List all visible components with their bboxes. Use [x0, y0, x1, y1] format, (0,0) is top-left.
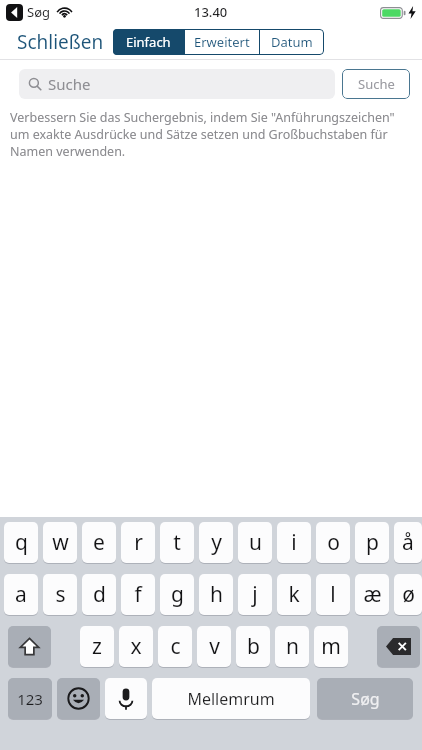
button[interactable]: e: [82, 522, 116, 563]
button[interactable]: t: [160, 522, 194, 563]
button[interactable]: Suche: [342, 69, 410, 99]
button[interactable]: k: [277, 574, 311, 615]
button[interactable]: n: [275, 626, 309, 667]
staticText: l: [330, 580, 336, 609]
button[interactable]: Schließen: [17, 29, 104, 55]
staticText: a: [15, 580, 27, 609]
button[interactable]: j: [238, 574, 272, 615]
staticText: f: [134, 580, 142, 609]
staticText: 123: [17, 689, 43, 709]
button[interactable]: a: [4, 574, 38, 615]
button[interactable]: v: [197, 626, 231, 667]
staticText: 13.40: [194, 3, 228, 21]
staticText: r: [134, 528, 143, 557]
staticText: h: [210, 580, 223, 609]
staticText: w: [52, 528, 69, 557]
staticText: d: [93, 580, 106, 609]
staticText: q: [15, 528, 28, 557]
button[interactable]: Back to Søg: [6, 4, 23, 21]
button[interactable]: h: [199, 574, 233, 615]
button[interactable]: m: [314, 626, 348, 667]
staticText: Søg: [27, 3, 50, 21]
button[interactable]: p: [355, 522, 389, 563]
button[interactable]: ø: [394, 574, 422, 615]
staticText: v: [209, 632, 220, 661]
button[interactable]: Emoji: [57, 678, 100, 719]
button[interactable]: å: [394, 522, 422, 563]
button[interactable]: l: [316, 574, 350, 615]
staticText: å: [402, 528, 414, 557]
staticText: Erweitert: [194, 33, 250, 51]
staticText: Verbessern Sie das Suchergebnis, indem S…: [10, 109, 406, 160]
staticText: p: [366, 528, 379, 557]
staticText: u: [249, 528, 262, 557]
button[interactable]: s: [43, 574, 77, 615]
button[interactable]: b: [236, 626, 270, 667]
staticText: æ: [363, 580, 382, 609]
staticText: g: [171, 580, 184, 609]
button[interactable]: r: [121, 522, 155, 563]
button[interactable]: y: [199, 522, 233, 563]
staticText: s: [55, 580, 66, 609]
staticText: b: [247, 632, 260, 661]
button[interactable]: Søg: [317, 678, 413, 719]
staticText: m: [321, 632, 341, 661]
staticText: Datum: [271, 33, 313, 51]
button[interactable]: w: [43, 522, 77, 563]
button[interactable]: c: [158, 626, 192, 667]
staticText: Einfach: [126, 33, 171, 51]
button[interactable]: u: [238, 522, 272, 563]
staticText: o: [327, 528, 340, 557]
button[interactable]: d: [82, 574, 116, 615]
button[interactable]: q: [4, 522, 38, 563]
button[interactable]: æ: [355, 574, 389, 615]
button[interactable]: i: [277, 522, 311, 563]
staticText: ø: [402, 580, 415, 609]
button[interactable]: o: [316, 522, 350, 563]
staticText: Suche: [48, 74, 91, 94]
staticText: c: [170, 632, 181, 661]
button[interactable]: Suche: [19, 69, 335, 99]
staticText: x: [130, 632, 142, 661]
button[interactable]: z: [80, 626, 114, 667]
staticText: e: [93, 528, 105, 557]
button[interactable]: f: [121, 574, 155, 615]
staticText: i: [291, 528, 297, 557]
button[interactable]: Mellemrum: [152, 678, 310, 719]
button[interactable]: Einfach: [113, 29, 184, 55]
button[interactable]: Shift: [8, 626, 51, 667]
staticText: n: [286, 632, 299, 661]
button[interactable]: Backspace: [377, 626, 420, 667]
button[interactable]: 123: [8, 678, 52, 719]
button[interactable]: g: [160, 574, 194, 615]
staticText: Mellemrum: [187, 688, 275, 710]
button[interactable]: Erweitert: [185, 29, 259, 55]
button[interactable]: Datum: [260, 29, 324, 55]
staticText: j: [252, 580, 258, 609]
staticText: t: [173, 528, 181, 557]
staticText: Søg: [351, 688, 380, 710]
button[interactable]: Dictate: [105, 678, 147, 719]
button[interactable]: x: [119, 626, 153, 667]
staticText: y: [211, 528, 222, 557]
staticText: Suche: [358, 75, 395, 93]
staticText: z: [92, 632, 102, 661]
staticText: k: [288, 580, 300, 609]
